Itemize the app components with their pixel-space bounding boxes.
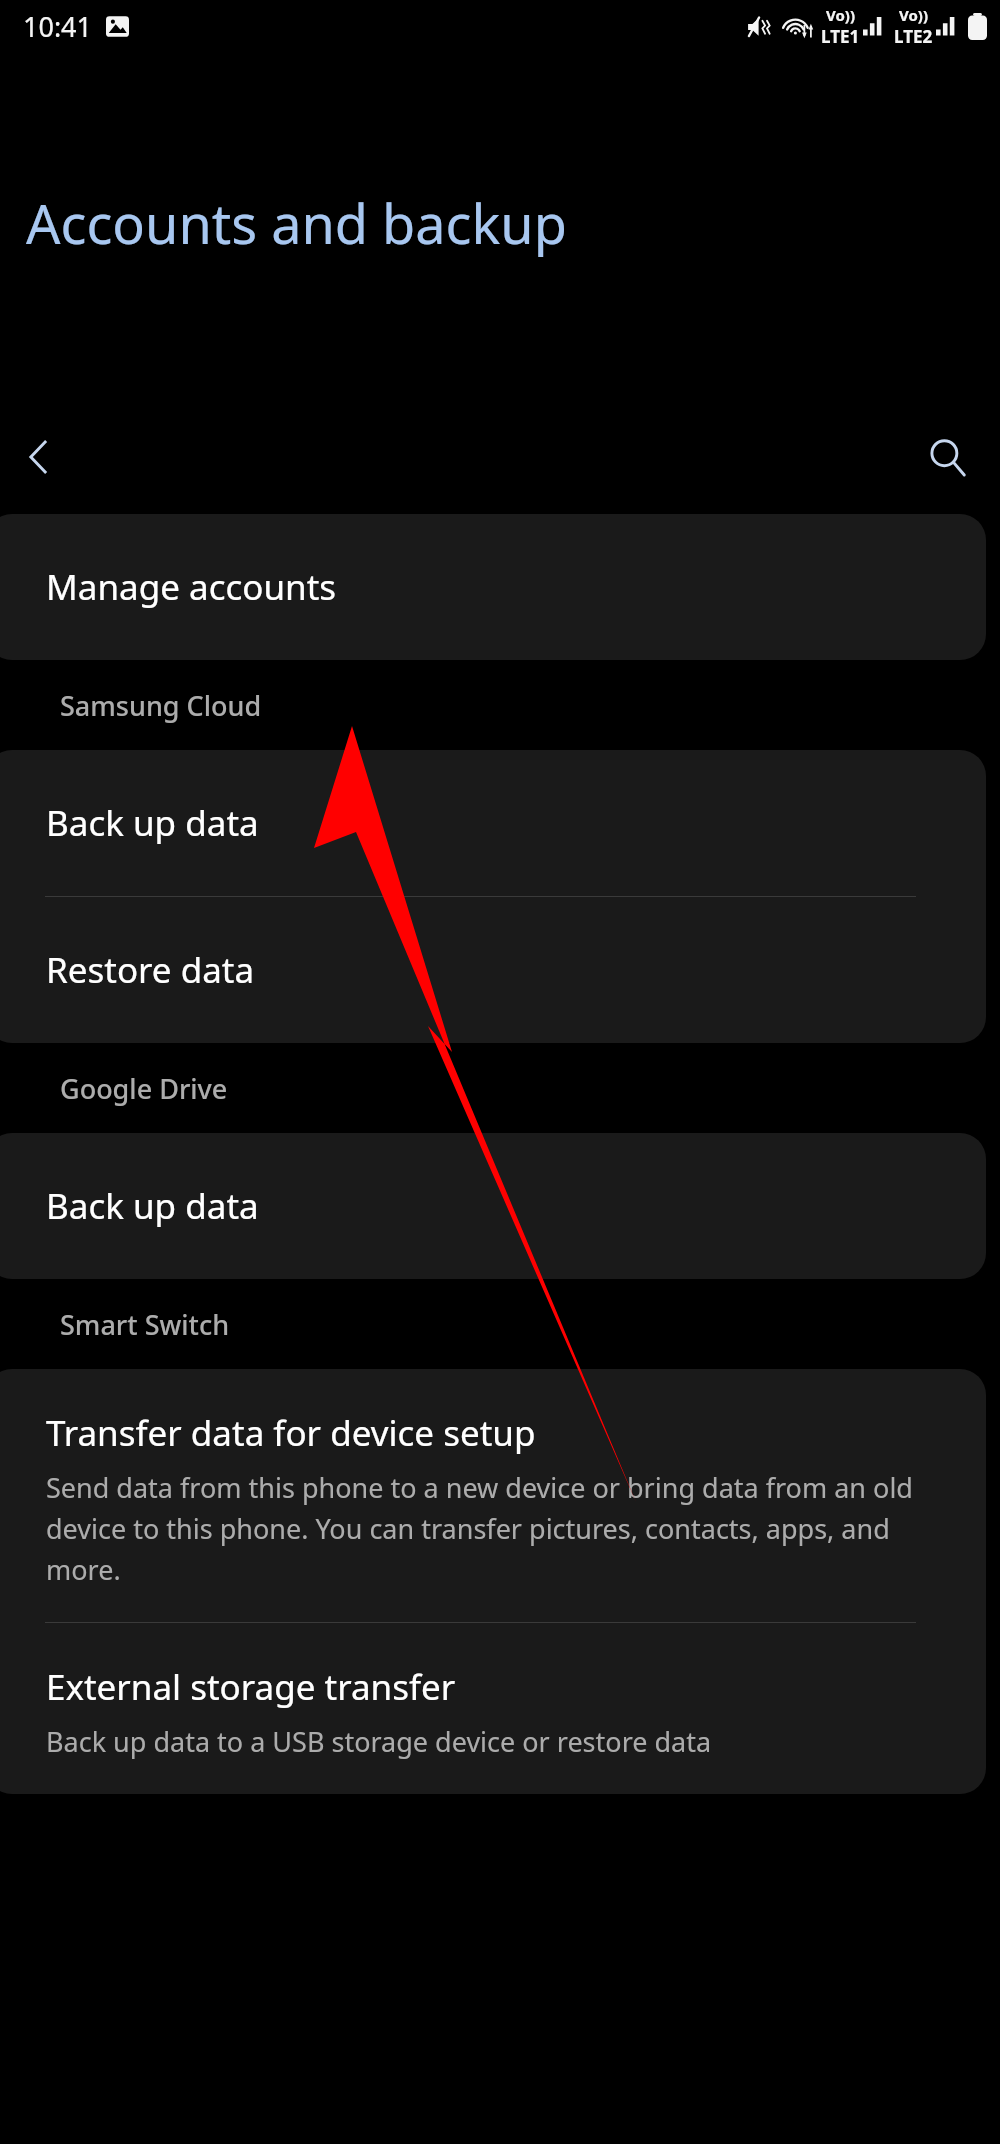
staticText: 10:41 [23, 8, 93, 45]
staticText: Back up data [46, 799, 259, 847]
staticText: Smart Switch [60, 1306, 230, 1343]
staticText: Accounts and backup [26, 186, 567, 260]
staticText: Google Drive [60, 1070, 228, 1107]
staticText: Back up data [46, 1182, 259, 1230]
staticText: Send data from this phone to a new devic… [46, 1469, 928, 1588]
staticText: Transfer data for device setup [46, 1409, 536, 1457]
staticText: Vo)) [826, 5, 855, 25]
button[interactable]: Transfer data for device setup [0, 1369, 986, 1622]
button[interactable]: Back up data [0, 1133, 986, 1279]
staticText: LTE1 [821, 25, 860, 48]
button[interactable]: Search [914, 424, 980, 490]
button[interactable]: Back up data [0, 750, 986, 896]
staticText: Back up data to a USB storage device or … [46, 1723, 712, 1760]
button[interactable]: Manage accounts [0, 514, 986, 660]
button[interactable]: Restore data [0, 897, 986, 1043]
staticText: Restore data [46, 946, 255, 994]
staticText: Manage accounts [46, 563, 337, 611]
button[interactable]: Back [8, 426, 70, 488]
button[interactable]: External storage transfer [0, 1623, 986, 1794]
staticText: LTE2 [894, 25, 933, 48]
staticText: Vo)) [899, 5, 928, 25]
staticText: Samsung Cloud [60, 687, 262, 724]
staticText: External storage transfer [46, 1663, 456, 1711]
